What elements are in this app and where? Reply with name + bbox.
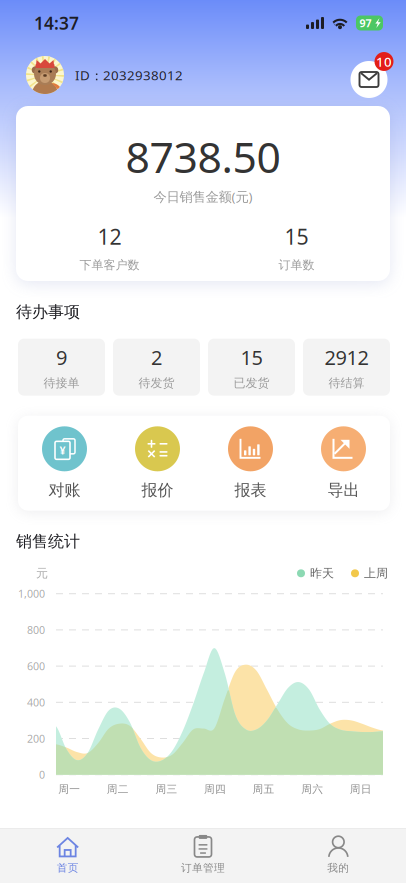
staticText: 报价	[141, 480, 173, 500]
staticText: 已发货	[233, 376, 269, 390]
staticText: 待接单	[43, 376, 79, 390]
staticText: ID：2032938012	[75, 66, 183, 84]
staticText: 导出	[327, 480, 359, 500]
button[interactable]: 2912	[303, 339, 390, 396]
staticText: 15	[284, 222, 308, 251]
staticText: 订单管理	[181, 861, 225, 874]
button[interactable]: 我的	[271, 828, 406, 883]
staticText: 元	[36, 566, 48, 581]
button[interactable]: 9	[18, 339, 105, 396]
button[interactable]: 报价	[111, 426, 204, 500]
staticText: 待结算	[328, 376, 364, 390]
button[interactable]: 订单管理	[135, 828, 271, 883]
button[interactable]: 2	[113, 339, 200, 396]
staticText: 待发货	[138, 376, 174, 390]
staticText: 首页	[57, 861, 79, 874]
staticText: 报表	[234, 480, 266, 500]
staticText: 2	[151, 344, 162, 371]
staticText: 我的	[327, 861, 349, 874]
staticText: 昨天	[310, 566, 334, 581]
staticText: 周五	[253, 783, 275, 796]
staticText: 下单客户数	[79, 258, 139, 272]
button[interactable]: ¥	[18, 426, 111, 500]
staticText: 800	[27, 623, 45, 637]
button[interactable]: Profile	[26, 56, 64, 94]
staticText: 14:37	[34, 11, 79, 34]
staticText: 15	[240, 344, 262, 371]
staticText: 400	[27, 695, 45, 709]
staticText: 10	[376, 53, 392, 70]
staticText: 订单数	[278, 258, 314, 272]
button[interactable]: Messages	[349, 52, 395, 98]
staticText: 周二	[107, 783, 129, 796]
staticText: 2912	[324, 344, 368, 371]
staticText: 0	[39, 768, 45, 782]
staticText: 周一	[58, 783, 80, 796]
button[interactable]: 导出	[297, 426, 390, 500]
staticText: 周日	[350, 783, 372, 796]
staticText: 9	[56, 344, 67, 371]
staticText: 周三	[155, 783, 177, 796]
button[interactable]: 首页	[0, 828, 135, 883]
button[interactable]: 报表	[204, 426, 297, 500]
staticText: 对账	[48, 480, 80, 500]
button[interactable]: 15	[208, 339, 295, 396]
staticText: 待办事项	[16, 302, 80, 322]
staticText: 200	[27, 731, 45, 746]
staticText: 周六	[301, 783, 323, 796]
staticText: 今日销售金额(元)	[153, 188, 252, 205]
staticText: ¥	[59, 443, 65, 457]
staticText: 上周	[364, 566, 388, 581]
staticText: 1,000	[18, 587, 45, 601]
staticText: 销售统计	[16, 532, 80, 551]
staticText: 12	[97, 222, 121, 251]
staticText: 8738.50	[125, 128, 280, 185]
staticText: 600	[27, 659, 45, 673]
staticText: 周四	[204, 783, 226, 796]
staticText: 97	[359, 16, 371, 30]
